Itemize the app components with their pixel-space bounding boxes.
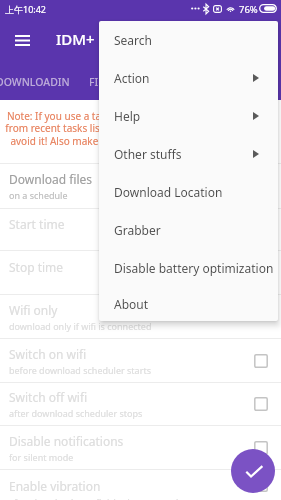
staticText: after download scheduler stops: [9, 407, 143, 419]
staticText: 76%: [239, 3, 258, 16]
staticText: download only if wifi is connected: [9, 320, 152, 332]
staticText: Note: If you use a task killer or you re…: [0, 109, 281, 148]
staticText: Wifi only: [9, 302, 58, 318]
button[interactable]: DOWNLOADING: [0, 71, 70, 93]
button[interactable]: Download Location: [99, 173, 278, 211]
staticText: before download scheduler starts: [9, 364, 151, 376]
staticText: Download files: [9, 171, 93, 187]
staticText: on a schedule: [9, 189, 68, 201]
button[interactable]: Wifi only: [0, 295, 281, 338]
staticText: after downloads are finished or stopped: [9, 496, 179, 500]
button[interactable]: Confirm: [231, 449, 275, 493]
staticText: Stop time: [9, 259, 64, 275]
staticText: Download Location: [114, 184, 223, 200]
button[interactable]: Grabber: [99, 211, 278, 249]
staticText: Switch off wifi: [9, 389, 88, 405]
button[interactable]: Disable notifications: [0, 426, 281, 469]
button[interactable]: About: [99, 287, 278, 321]
staticText: for silent mode: [9, 451, 74, 463]
staticText: Help: [114, 108, 141, 124]
staticText: IDM+: [56, 29, 95, 49]
staticText: Other stuffs: [114, 146, 182, 162]
staticText: Start time: [9, 216, 65, 232]
staticText: About: [114, 296, 149, 312]
button[interactable]: Open navigation menu: [8, 26, 36, 54]
staticText: FINISHED: [89, 75, 138, 89]
staticText: Disable notifications: [9, 433, 124, 449]
staticText: 上午10:42: [5, 3, 47, 15]
button[interactable]: Download files: [0, 164, 281, 208]
button[interactable]: Enable vibration: [0, 470, 281, 500]
button[interactable]: Switch off wifi: [0, 383, 281, 425]
staticText: Disable battery optimization: [114, 260, 274, 276]
button[interactable]: Disable battery optimization: [99, 249, 278, 287]
button[interactable]: Action: [99, 59, 278, 97]
button[interactable]: FINISHED: [89, 71, 144, 93]
button[interactable]: Help: [99, 97, 278, 135]
staticText: Action: [114, 70, 150, 86]
button[interactable]: Switch on wifi: [0, 339, 281, 382]
button[interactable]: Other stuffs: [99, 135, 278, 173]
staticText: Switch on wifi: [9, 346, 87, 362]
staticText: Search: [114, 32, 152, 48]
staticText: Enable vibration: [9, 478, 101, 494]
button[interactable]: Stop time: [0, 251, 281, 294]
button[interactable]: Search: [99, 21, 278, 59]
staticText: DOWNLOADING: [0, 75, 70, 89]
button[interactable]: Start time: [0, 209, 281, 250]
staticText: Grabber: [114, 222, 161, 238]
